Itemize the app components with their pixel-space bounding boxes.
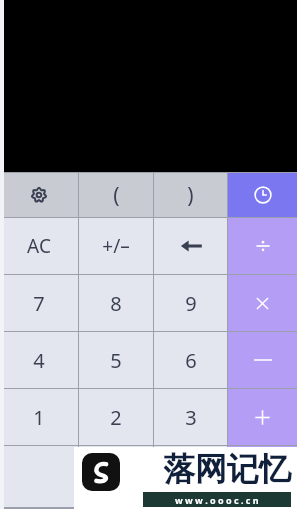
button[interactable]: Divide [228, 218, 297, 274]
staticText: 8 [110, 290, 122, 317]
button[interactable]: Backspace [154, 218, 227, 274]
button[interactable]: 1 [0, 389, 78, 445]
button[interactable]: 9 [154, 275, 227, 331]
staticText: ) [187, 181, 194, 210]
button[interactable]: Plus [228, 389, 297, 445]
staticText: +/– [102, 233, 130, 259]
button[interactable]: 8 [79, 275, 153, 331]
staticText: w w w . o o o c . c n [175, 494, 259, 506]
staticText: 落网记忆 [163, 449, 291, 489]
button[interactable]: ( [79, 173, 153, 217]
staticText: AC [27, 233, 51, 259]
button[interactable]: 7 [0, 275, 78, 331]
button[interactable] [79, 446, 153, 507]
button[interactable]: 2 [79, 389, 153, 445]
button[interactable]: History [228, 173, 297, 217]
staticText: 4 [33, 347, 45, 374]
button[interactable]: +/– [79, 218, 153, 274]
staticText: 7 [33, 290, 45, 317]
button[interactable]: 4 [0, 332, 78, 388]
staticText: 5 [110, 347, 122, 374]
staticText: 2 [110, 404, 122, 431]
button[interactable] [228, 446, 297, 507]
button[interactable]: 5 [79, 332, 153, 388]
button[interactable] [0, 446, 78, 507]
button[interactable] [154, 446, 227, 507]
button[interactable]: Settings [0, 173, 78, 217]
button[interactable]: Minus [228, 332, 297, 388]
staticText: 3 [185, 404, 197, 431]
button[interactable]: AC [0, 218, 78, 274]
button[interactable]: Multiply [228, 275, 297, 331]
staticText: 9 [185, 290, 197, 317]
staticText: ( [113, 181, 120, 210]
staticText: 1 [33, 404, 45, 431]
button[interactable]: ) [154, 173, 227, 217]
button[interactable]: 6 [154, 332, 227, 388]
button[interactable]: 3 [154, 389, 227, 445]
staticText: 6 [185, 347, 197, 374]
